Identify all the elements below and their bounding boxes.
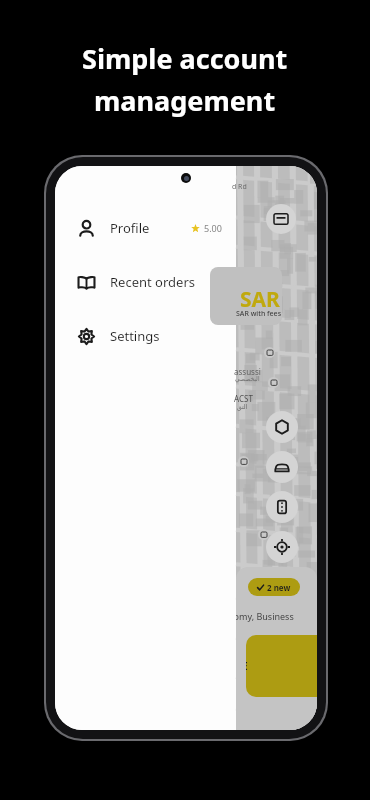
staticText: Recent orders: [110, 273, 195, 291]
button[interactable]: Profile: [55, 212, 236, 244]
staticText: 2 new: [267, 582, 291, 593]
staticText: Settings: [110, 327, 160, 345]
staticText: nomy, Business: [236, 610, 294, 622]
staticText: assussi: [234, 366, 261, 377]
staticText: management: [94, 82, 276, 119]
button[interactable]: Zones: [266, 411, 298, 443]
staticText: SAR: [240, 285, 280, 314]
staticText: 5.00: [204, 222, 222, 234]
staticText: البخصصي: [235, 375, 260, 382]
button[interactable]: Traffic: [266, 491, 298, 523]
button[interactable]: SAR: [210, 267, 282, 325]
staticText: التق: [237, 403, 248, 410]
staticText: Profile: [110, 219, 150, 237]
button[interactable]: Messages: [266, 204, 296, 234]
button[interactable]: My location: [266, 531, 298, 563]
staticText: SAR with fees: [236, 309, 282, 319]
button[interactable]: Recent orders: [55, 266, 236, 298]
button[interactable]: Car: [266, 451, 298, 483]
staticText: d Rd: [232, 182, 247, 192]
button[interactable]: 2 new: [248, 578, 300, 596]
staticText: Simple account: [82, 40, 288, 77]
button[interactable]: Settings: [55, 320, 236, 352]
staticText: ACST: [234, 393, 253, 404]
button[interactable]: E: [246, 635, 317, 697]
staticText: E: [246, 659, 248, 673]
